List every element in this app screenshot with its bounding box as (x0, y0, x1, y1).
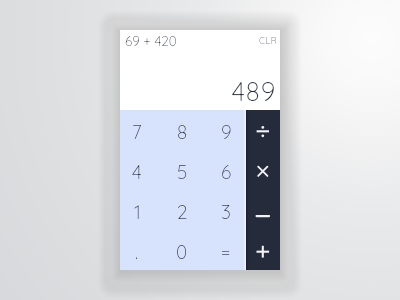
staticText: = (221, 240, 231, 264)
button[interactable]: 4 (116, 152, 158, 192)
staticText: 3 (221, 200, 231, 224)
button[interactable]: 1 (116, 192, 158, 232)
staticText: 0 (176, 240, 188, 264)
button[interactable]: 6 (205, 152, 247, 192)
button[interactable]: Multiply (246, 150, 280, 190)
staticText: 6 (221, 160, 232, 184)
button[interactable]: Add (246, 230, 280, 270)
button[interactable]: . (116, 232, 158, 272)
staticText: 8 (177, 120, 188, 144)
staticText: 489 (172, 75, 276, 108)
button[interactable]: Divide (246, 110, 280, 150)
staticText: CLR (259, 35, 278, 46)
button[interactable]: Subtract (246, 190, 280, 230)
staticText: 5 (177, 160, 188, 184)
button[interactable]: 0 (161, 232, 203, 272)
button[interactable]: 5 (161, 152, 203, 192)
button[interactable]: 9 (205, 112, 247, 152)
staticText: 69 + 420 (125, 32, 177, 49)
staticText: 1 (134, 200, 141, 224)
button[interactable]: 3 (205, 192, 247, 232)
staticText: 4 (132, 160, 142, 184)
button[interactable]: 7 (116, 112, 158, 152)
staticText: 2 (177, 200, 188, 224)
button[interactable]: 8 (161, 112, 203, 152)
button[interactable]: 2 (161, 192, 203, 232)
button[interactable]: = (205, 232, 247, 272)
staticText: . (135, 240, 139, 264)
staticText: 7 (132, 120, 142, 144)
staticText: 9 (221, 120, 232, 144)
button[interactable]: CLR (256, 30, 280, 49)
